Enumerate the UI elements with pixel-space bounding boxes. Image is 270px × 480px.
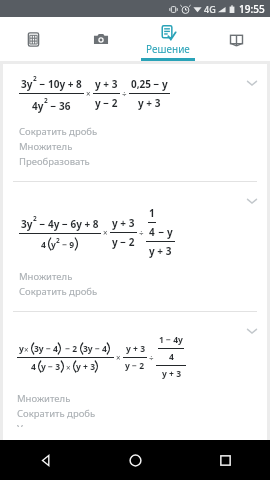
staticText: − 2 [63, 343, 78, 355]
staticText: y + 3 [149, 244, 172, 258]
button[interactable]: y [3, 312, 267, 440]
staticText: 4 [41, 239, 46, 251]
staticText: × [84, 88, 93, 99]
staticText: − y [156, 225, 173, 239]
staticText: 4 [169, 351, 174, 363]
staticText: 3y − 4 [34, 343, 58, 355]
button[interactable]: Сократить дробь [17, 406, 96, 421]
staticText: × [101, 227, 110, 238]
button[interactable]: Множитель [19, 139, 73, 154]
staticText: 3y [21, 217, 33, 231]
staticText: 1 − 4y [159, 334, 183, 346]
staticText: − 10y + 8 [37, 77, 82, 91]
staticText: y + 3 [126, 343, 145, 355]
staticText: ÷ [137, 227, 146, 238]
button[interactable]: Calculator [0, 17, 67, 61]
staticText: 4G [204, 3, 216, 15]
staticText: ÷ [120, 88, 129, 99]
button[interactable]: 3y [3, 182, 267, 311]
button[interactable]: Recent apps [180, 440, 270, 480]
button[interactable]: Expand [245, 76, 259, 90]
button[interactable]: Решение [134, 17, 202, 61]
button[interactable]: Множитель [17, 391, 71, 406]
staticText: 2 [33, 214, 37, 223]
staticText: y − 2 [95, 96, 118, 110]
staticText: 4 [31, 361, 36, 373]
staticText: y + 3 [162, 368, 181, 380]
staticText: × [66, 362, 71, 373]
staticText: ÷ [147, 352, 156, 363]
staticText: 4 [149, 225, 155, 239]
button[interactable]: Expand [245, 194, 259, 208]
button[interactable]: Множитель [19, 269, 73, 284]
staticText: y [19, 343, 24, 355]
staticText: y − 2 [112, 235, 135, 249]
staticText: × [24, 344, 29, 355]
button[interactable]: 3y [3, 64, 267, 181]
staticText: − 4y − 6y + 8 [37, 217, 99, 231]
staticText: y + 3 [76, 361, 95, 373]
staticText: 3y − 4 [83, 343, 107, 355]
staticText: 0,25 − y [131, 77, 168, 91]
staticText: y [51, 239, 56, 251]
button[interactable]: Home [90, 440, 180, 480]
button[interactable]: Camera [67, 17, 134, 61]
staticText: y − 2 [125, 360, 145, 372]
button[interactable]: Преобразовать [19, 154, 90, 169]
staticText: y + 3 [138, 96, 161, 110]
button[interactable]: Dictionary [202, 17, 270, 61]
staticText: y + 3 [112, 216, 135, 230]
button[interactable]: Сократить дробь [19, 124, 98, 139]
staticText: 3y [21, 77, 33, 91]
staticText: 2 [33, 74, 37, 83]
staticText: Решение [146, 42, 190, 56]
button[interactable]: Упростить [17, 421, 65, 428]
staticText: y − 3 [41, 361, 61, 373]
button[interactable]: Expand [245, 324, 259, 338]
staticText: y + 3 [95, 77, 118, 91]
staticText: 2 [56, 236, 60, 245]
button[interactable]: Сократить дробь [19, 284, 98, 299]
staticText: − 9 [60, 239, 75, 251]
staticText: × [114, 352, 123, 363]
button[interactable]: Back [0, 440, 90, 480]
staticText: 1 [149, 206, 155, 220]
staticText: 19:55 [239, 2, 265, 16]
staticText: − 36 [48, 99, 71, 113]
staticText: 2 [44, 96, 48, 105]
staticText: 4y [32, 99, 44, 113]
